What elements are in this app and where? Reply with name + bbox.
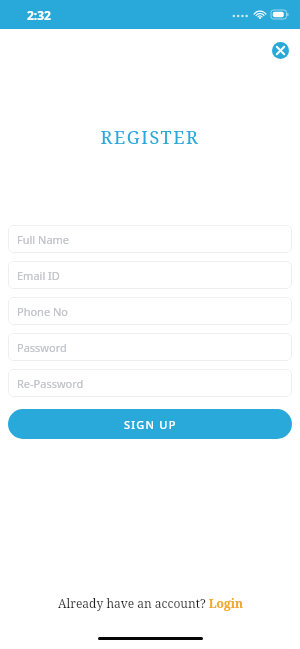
staticText: Email ID <box>17 268 60 283</box>
button[interactable]: Re-Password <box>8 369 292 397</box>
staticText: REGISTER <box>0 125 300 150</box>
button[interactable]: Email ID <box>8 261 292 289</box>
button[interactable]: SIGN UP <box>8 409 292 439</box>
staticText: Full Name <box>17 232 70 247</box>
button[interactable]: Password <box>8 333 292 361</box>
button[interactable]: Full Name <box>8 225 292 253</box>
button[interactable]: Phone No <box>8 297 292 325</box>
staticText: SIGN UP <box>124 417 177 432</box>
staticText: Password <box>17 340 67 355</box>
button[interactable]: Close <box>272 42 289 59</box>
staticText: 2:32 <box>27 7 51 23</box>
staticText: Already have an account? Login <box>58 595 243 611</box>
staticText: Re-Password <box>17 376 84 391</box>
button[interactable]: Already have an account? Login <box>0 595 300 611</box>
staticText: Phone No <box>17 304 68 319</box>
